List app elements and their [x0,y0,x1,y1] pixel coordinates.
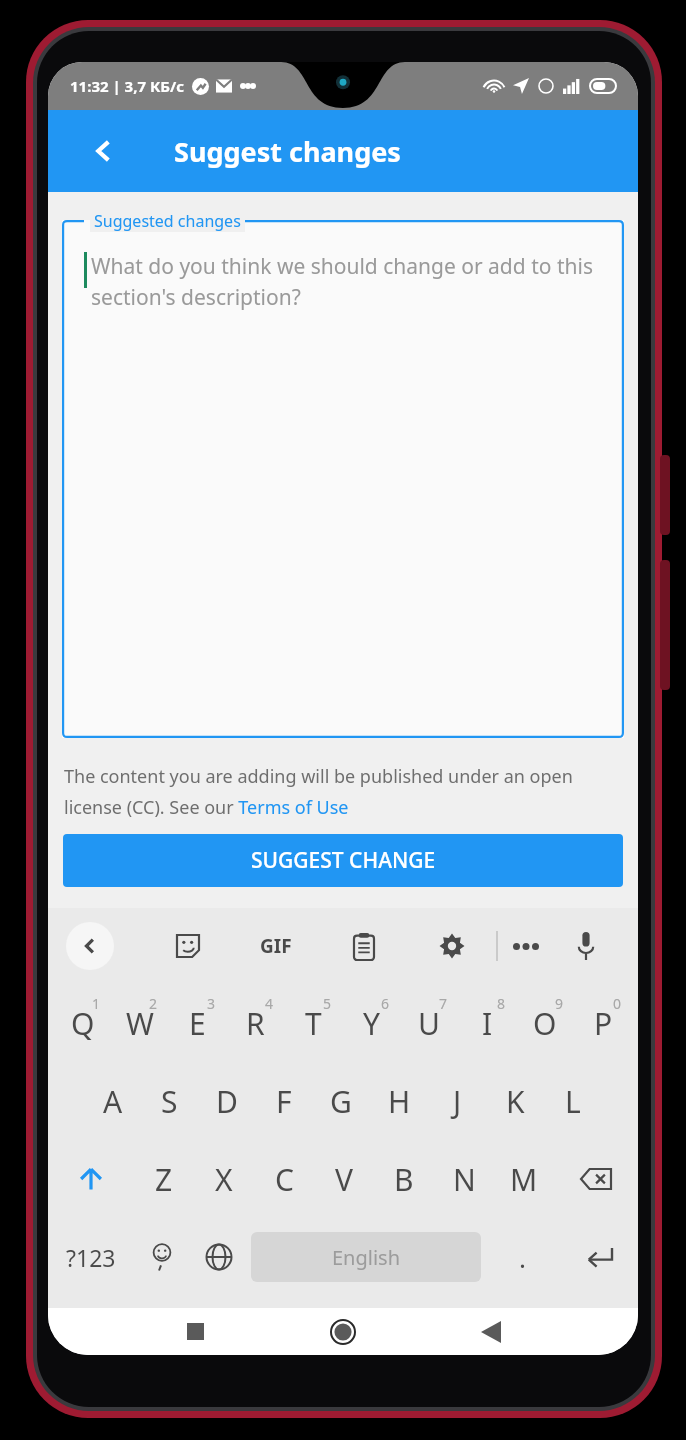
staticText: H [388,1081,411,1122]
staticText: ?123 [66,1242,116,1273]
staticText: GIF [260,933,292,959]
button[interactable]: W [111,984,168,1062]
staticText: 1 [92,994,101,1013]
button[interactable]: P [574,984,632,1062]
button[interactable]: D [198,1062,255,1140]
staticText: 2 [149,994,158,1013]
button[interactable]: F [255,1062,312,1140]
button[interactable]: C [254,1140,314,1218]
button[interactable]: E [168,984,226,1062]
button[interactable]: Emoji [133,1218,190,1296]
staticText: U [418,1003,440,1044]
button[interactable]: SUGGEST CHANGE [63,834,623,887]
staticText: O [533,1003,557,1044]
button[interactable]: L [544,1062,602,1140]
button[interactable]: N [434,1140,494,1218]
staticText: J [453,1081,462,1122]
button[interactable]: X [194,1140,254,1218]
staticText: 4 [265,994,274,1013]
button[interactable]: K [486,1062,544,1140]
button[interactable]: J [428,1062,486,1140]
button[interactable]: M [494,1140,554,1218]
button[interactable]: Shift [48,1140,133,1218]
button[interactable]: Back [464,1308,518,1355]
staticText: Suggest changes [174,133,401,170]
button[interactable]: Settings [408,908,496,984]
staticText: R [246,1003,265,1044]
staticText: V [335,1159,353,1200]
button[interactable]: H [370,1062,428,1140]
button[interactable]: GIF [232,908,320,984]
staticText: W [126,1003,154,1044]
staticText: 11:32 | 3,7 КБ/с [70,76,185,96]
staticText: 0 [613,994,622,1013]
button[interactable]: What do you think we should change or ad… [62,220,624,738]
staticText: English [332,1244,401,1271]
staticText: A [103,1081,123,1122]
button[interactable]: A [84,1062,141,1140]
staticText: What do you think we should change or ad… [91,252,600,311]
button[interactable]: Backspace [554,1140,638,1218]
button[interactable]: Z [133,1140,194,1218]
button[interactable]: ?123 [48,1218,133,1296]
button[interactable]: More [498,908,554,984]
staticText: Z [155,1159,173,1200]
button[interactable]: O [516,984,574,1062]
button[interactable]: S [141,1062,198,1140]
staticText: Y [363,1003,380,1044]
button[interactable]: B [374,1140,434,1218]
staticText: K [506,1081,525,1122]
button[interactable]: Back [82,129,126,173]
staticText: 7 [439,994,448,1013]
button[interactable]: Q [54,984,111,1062]
staticText: 3 [207,994,216,1013]
button[interactable]: Home [316,1308,370,1355]
staticText: I [482,1003,493,1044]
staticText: C [275,1159,294,1200]
staticText: S [161,1081,178,1122]
staticText: N [453,1159,476,1200]
button[interactable]: Recents [168,1308,222,1355]
button[interactable]: Enter [559,1218,638,1296]
staticText: 8 [497,994,506,1013]
staticText: Q [71,1003,95,1044]
staticText: Suggested changes [94,210,241,232]
staticText: SUGGEST CHANGE [251,846,436,875]
staticText: 9 [555,994,564,1013]
staticText: D [216,1081,238,1122]
button[interactable]: Back [66,922,114,970]
staticText: . [519,1240,526,1275]
button[interactable]: I [458,984,516,1062]
button[interactable]: U [400,984,458,1062]
button[interactable]: English [251,1232,481,1282]
button[interactable]: T [284,984,342,1062]
button[interactable]: V [314,1140,374,1218]
staticText: T [305,1003,322,1044]
button[interactable]: Voice input [554,908,618,984]
staticText: L [565,1081,581,1122]
staticText: B [394,1159,414,1200]
button[interactable]: Stickers [144,908,232,984]
button[interactable]: Y [342,984,400,1062]
staticText: X [215,1159,233,1200]
staticText: The content you are adding will be publi… [64,764,622,820]
staticText: M [510,1159,538,1200]
button[interactable]: R [226,984,284,1062]
staticText: P [594,1003,613,1044]
button[interactable]: G [312,1062,370,1140]
staticText: E [189,1003,206,1044]
staticText: F [276,1081,292,1122]
staticText: 5 [323,994,332,1013]
button[interactable]: . [485,1218,559,1296]
staticText: 6 [381,994,390,1013]
button[interactable]: Change language [190,1218,247,1296]
button[interactable]: Clipboard [320,908,408,984]
staticText: G [330,1081,352,1122]
